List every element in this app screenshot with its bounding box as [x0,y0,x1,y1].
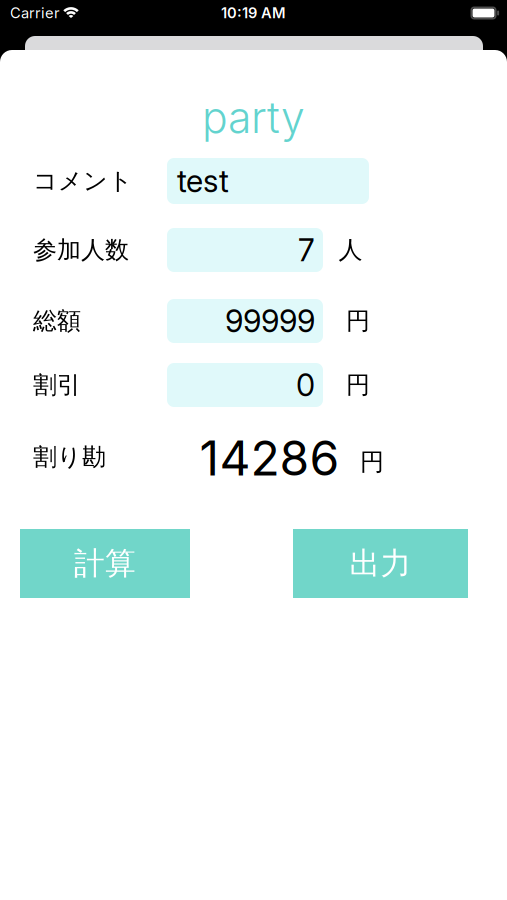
staticText: 10:19 AM [221,4,286,22]
button[interactable]: 99999 [167,299,323,343]
staticText: 出力 [349,545,411,582]
staticText: 7 [298,232,315,268]
staticText: 割り勘 [33,442,106,472]
staticText: test [177,163,229,199]
staticText: 円 [346,306,370,336]
button[interactable]: 出力 [293,529,468,598]
staticText: 参加人数 [33,235,129,265]
staticText: 円 [346,370,370,400]
staticText: 総額 [33,306,81,336]
staticText: 人 [338,235,362,265]
staticText: 14286 [199,430,339,486]
staticText: party [202,92,305,143]
button[interactable]: 7 [167,228,323,272]
staticText: 99999 [225,303,315,339]
staticText: Carrier [10,4,60,22]
staticText: 計算 [74,545,136,582]
button[interactable]: test [167,158,369,204]
staticText: 円 [360,447,384,477]
staticText: 割引 [33,370,81,400]
staticText: 0 [296,367,315,403]
staticText: コメント [33,166,133,196]
button[interactable]: 計算 [20,529,190,598]
button[interactable]: 0 [167,363,323,407]
